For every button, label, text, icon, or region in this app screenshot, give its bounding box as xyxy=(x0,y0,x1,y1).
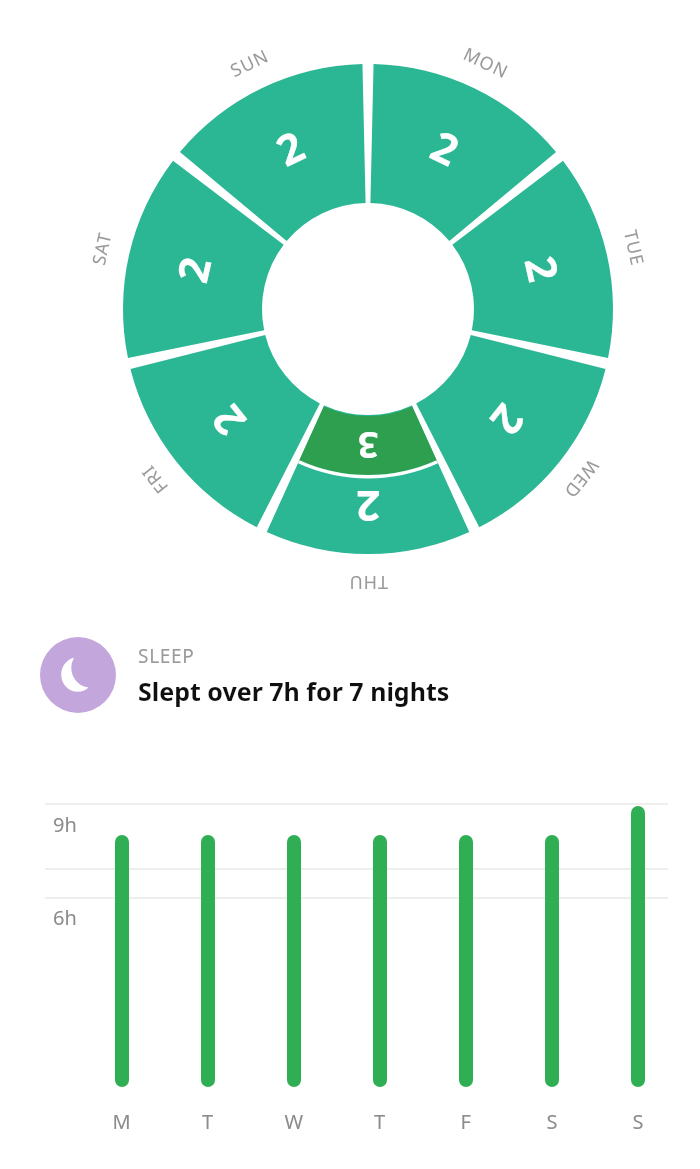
staticText: SLEEP xyxy=(138,643,195,669)
other: Sleep xyxy=(57,654,99,696)
staticText: Slept over 7h for 7 nights xyxy=(138,674,450,708)
button[interactable]: Sleep xyxy=(0,620,700,730)
button[interactable] xyxy=(0,0,700,620)
button[interactable] xyxy=(37,758,690,1169)
